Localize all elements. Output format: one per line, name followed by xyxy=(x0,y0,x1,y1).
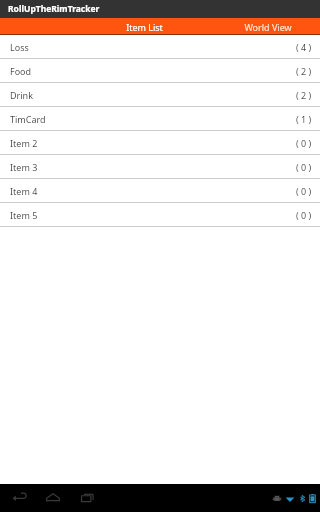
button[interactable]: World View xyxy=(203,18,320,35)
button[interactable]: Item 3 xyxy=(0,155,320,179)
button[interactable]: Food xyxy=(0,59,320,83)
button[interactable]: TimCard xyxy=(0,107,320,131)
staticText: World View xyxy=(244,21,292,33)
staticText: Loss xyxy=(10,41,29,53)
staticText: RollUpTheRimTracker xyxy=(8,3,100,15)
button[interactable]: Item 2 xyxy=(0,131,320,155)
staticText: ( 1 ) xyxy=(296,113,312,125)
staticText: ( 2 ) xyxy=(296,89,312,101)
button[interactable]: Item 5 xyxy=(0,203,320,227)
staticText: Item 2 xyxy=(10,137,38,149)
staticText: ( 4 ) xyxy=(296,41,312,53)
button[interactable]: Item List xyxy=(86,18,203,35)
staticText: ( 2 ) xyxy=(296,65,312,77)
staticText: Item 3 xyxy=(10,161,38,173)
staticText: ( 0 ) xyxy=(296,185,312,197)
button[interactable]: Back xyxy=(6,485,32,511)
button[interactable]: Drink xyxy=(0,83,320,107)
staticText: Drink xyxy=(10,89,33,101)
staticText: Food xyxy=(10,65,32,77)
staticText: ( 0 ) xyxy=(296,209,312,221)
staticText: ( 0 ) xyxy=(296,161,312,173)
staticText: TimCard xyxy=(10,113,46,125)
staticText: Item List xyxy=(126,21,163,33)
button[interactable]: Item 4 xyxy=(0,179,320,203)
button[interactable]: Loss xyxy=(0,35,320,59)
staticText: Item 4 xyxy=(10,185,38,197)
button[interactable]: Recent apps xyxy=(74,485,100,511)
button[interactable]: Home xyxy=(40,485,66,511)
staticText: ( 0 ) xyxy=(296,137,312,149)
staticText: Item 5 xyxy=(10,209,38,221)
